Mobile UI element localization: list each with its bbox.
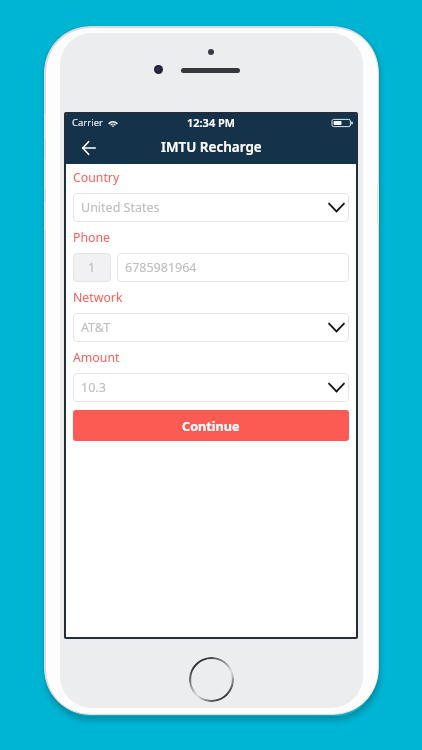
button[interactable]: Home bbox=[189, 657, 234, 702]
button[interactable]: 10.3 bbox=[73, 373, 349, 402]
staticText: 10.3 bbox=[81, 379, 106, 396]
staticText: 1 bbox=[88, 259, 96, 276]
staticText: 6785981964 bbox=[125, 259, 197, 276]
staticText: Phone bbox=[73, 229, 111, 246]
staticText: Carrier bbox=[72, 116, 103, 129]
button[interactable]: United States bbox=[73, 193, 349, 222]
button[interactable]: Continue bbox=[73, 410, 349, 441]
button[interactable]: Back bbox=[74, 133, 104, 163]
button[interactable]: 1 bbox=[73, 253, 111, 282]
staticText: IMTU Recharge bbox=[161, 138, 262, 156]
staticText: Amount bbox=[73, 349, 120, 366]
staticText: AT&T bbox=[81, 319, 111, 336]
staticText: Country bbox=[73, 169, 120, 186]
staticText: 12:34 PM bbox=[187, 115, 236, 130]
staticText: Network bbox=[73, 289, 123, 306]
staticText: United States bbox=[81, 199, 160, 216]
button[interactable]: AT&T bbox=[73, 313, 349, 342]
staticText: Continue bbox=[182, 417, 240, 434]
button[interactable]: 6785981964 bbox=[117, 253, 349, 282]
